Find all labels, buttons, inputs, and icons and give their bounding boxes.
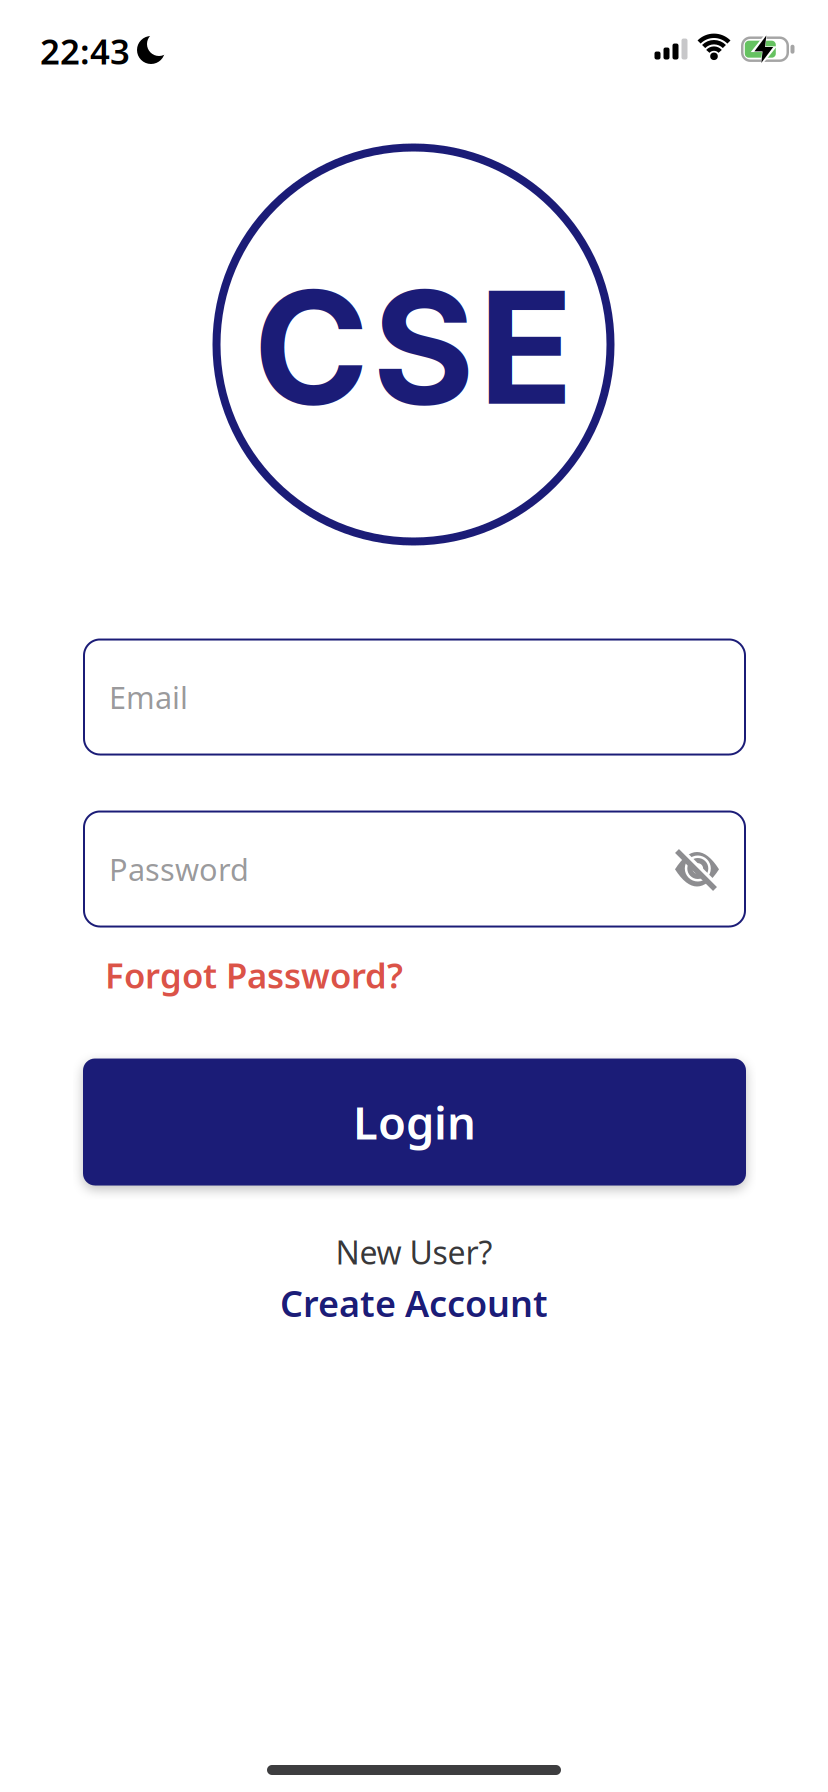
button[interactable]: Create Account (280, 1279, 548, 1327)
staticText: CSE (253, 253, 573, 441)
staticText: Forgot Password? (105, 952, 403, 998)
staticText: Password (109, 849, 249, 889)
button[interactable]: Email (83, 638, 746, 755)
button[interactable]: Password (83, 810, 746, 927)
button[interactable]: Forgot Password? (105, 952, 403, 998)
button[interactable]: Login (83, 1058, 746, 1185)
staticText: 22:43 (40, 28, 130, 74)
staticText: Create Account (280, 1279, 548, 1327)
staticText: Email (109, 677, 188, 717)
button[interactable] (672, 843, 724, 895)
staticText: New User? (335, 1231, 492, 1273)
staticText: Login (353, 1092, 476, 1152)
